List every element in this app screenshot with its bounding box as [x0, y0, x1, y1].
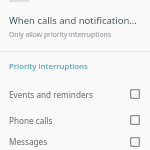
staticText: Messages	[9, 136, 128, 147]
staticText: When calls and notifications arrive	[9, 14, 140, 27]
staticText: Events and reminders	[9, 89, 128, 100]
button[interactable]: When calls and notifications arrive	[0, 12, 150, 45]
staticText: Priority interruptions	[9, 61, 88, 72]
staticText: Phone calls	[9, 115, 128, 126]
button[interactable]: Events and reminders checkbox, unchecked	[128, 87, 142, 101]
staticText: Only allow priority interruptions	[9, 30, 112, 39]
button[interactable]: Events and reminders	[0, 81, 150, 107]
button[interactable]: Phone calls	[0, 107, 150, 133]
button[interactable]: Messages checkbox, unchecked	[128, 135, 142, 149]
button[interactable]: Phone calls checkbox, unchecked	[128, 113, 142, 127]
button[interactable]: Messages	[0, 133, 150, 150]
